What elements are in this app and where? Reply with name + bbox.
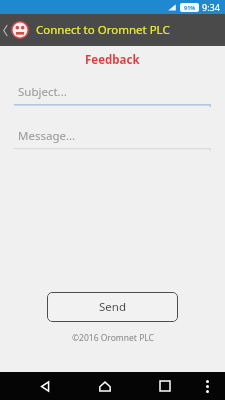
staticText: Feedback <box>85 52 140 68</box>
staticText: 91% <box>184 4 196 11</box>
button[interactable]: Subject... <box>14 82 211 108</box>
button[interactable]: Back <box>0 14 10 46</box>
staticText: Send <box>99 299 126 315</box>
button[interactable]: App logo <box>10 20 30 40</box>
button[interactable]: Home <box>88 372 122 400</box>
staticText: Message... <box>18 128 76 144</box>
staticText: 9:34 <box>202 1 220 13</box>
button[interactable]: Recent apps <box>148 372 182 400</box>
staticText: Subject... <box>18 84 67 100</box>
button[interactable]: Message... <box>14 126 211 152</box>
staticText: Connect to Oromnet PLC <box>36 22 170 38</box>
button[interactable]: Back <box>28 372 62 400</box>
staticText: ©2016 Oromnet PLC <box>72 332 154 344</box>
button[interactable]: Send <box>47 292 178 322</box>
button[interactable]: More options <box>196 372 218 400</box>
